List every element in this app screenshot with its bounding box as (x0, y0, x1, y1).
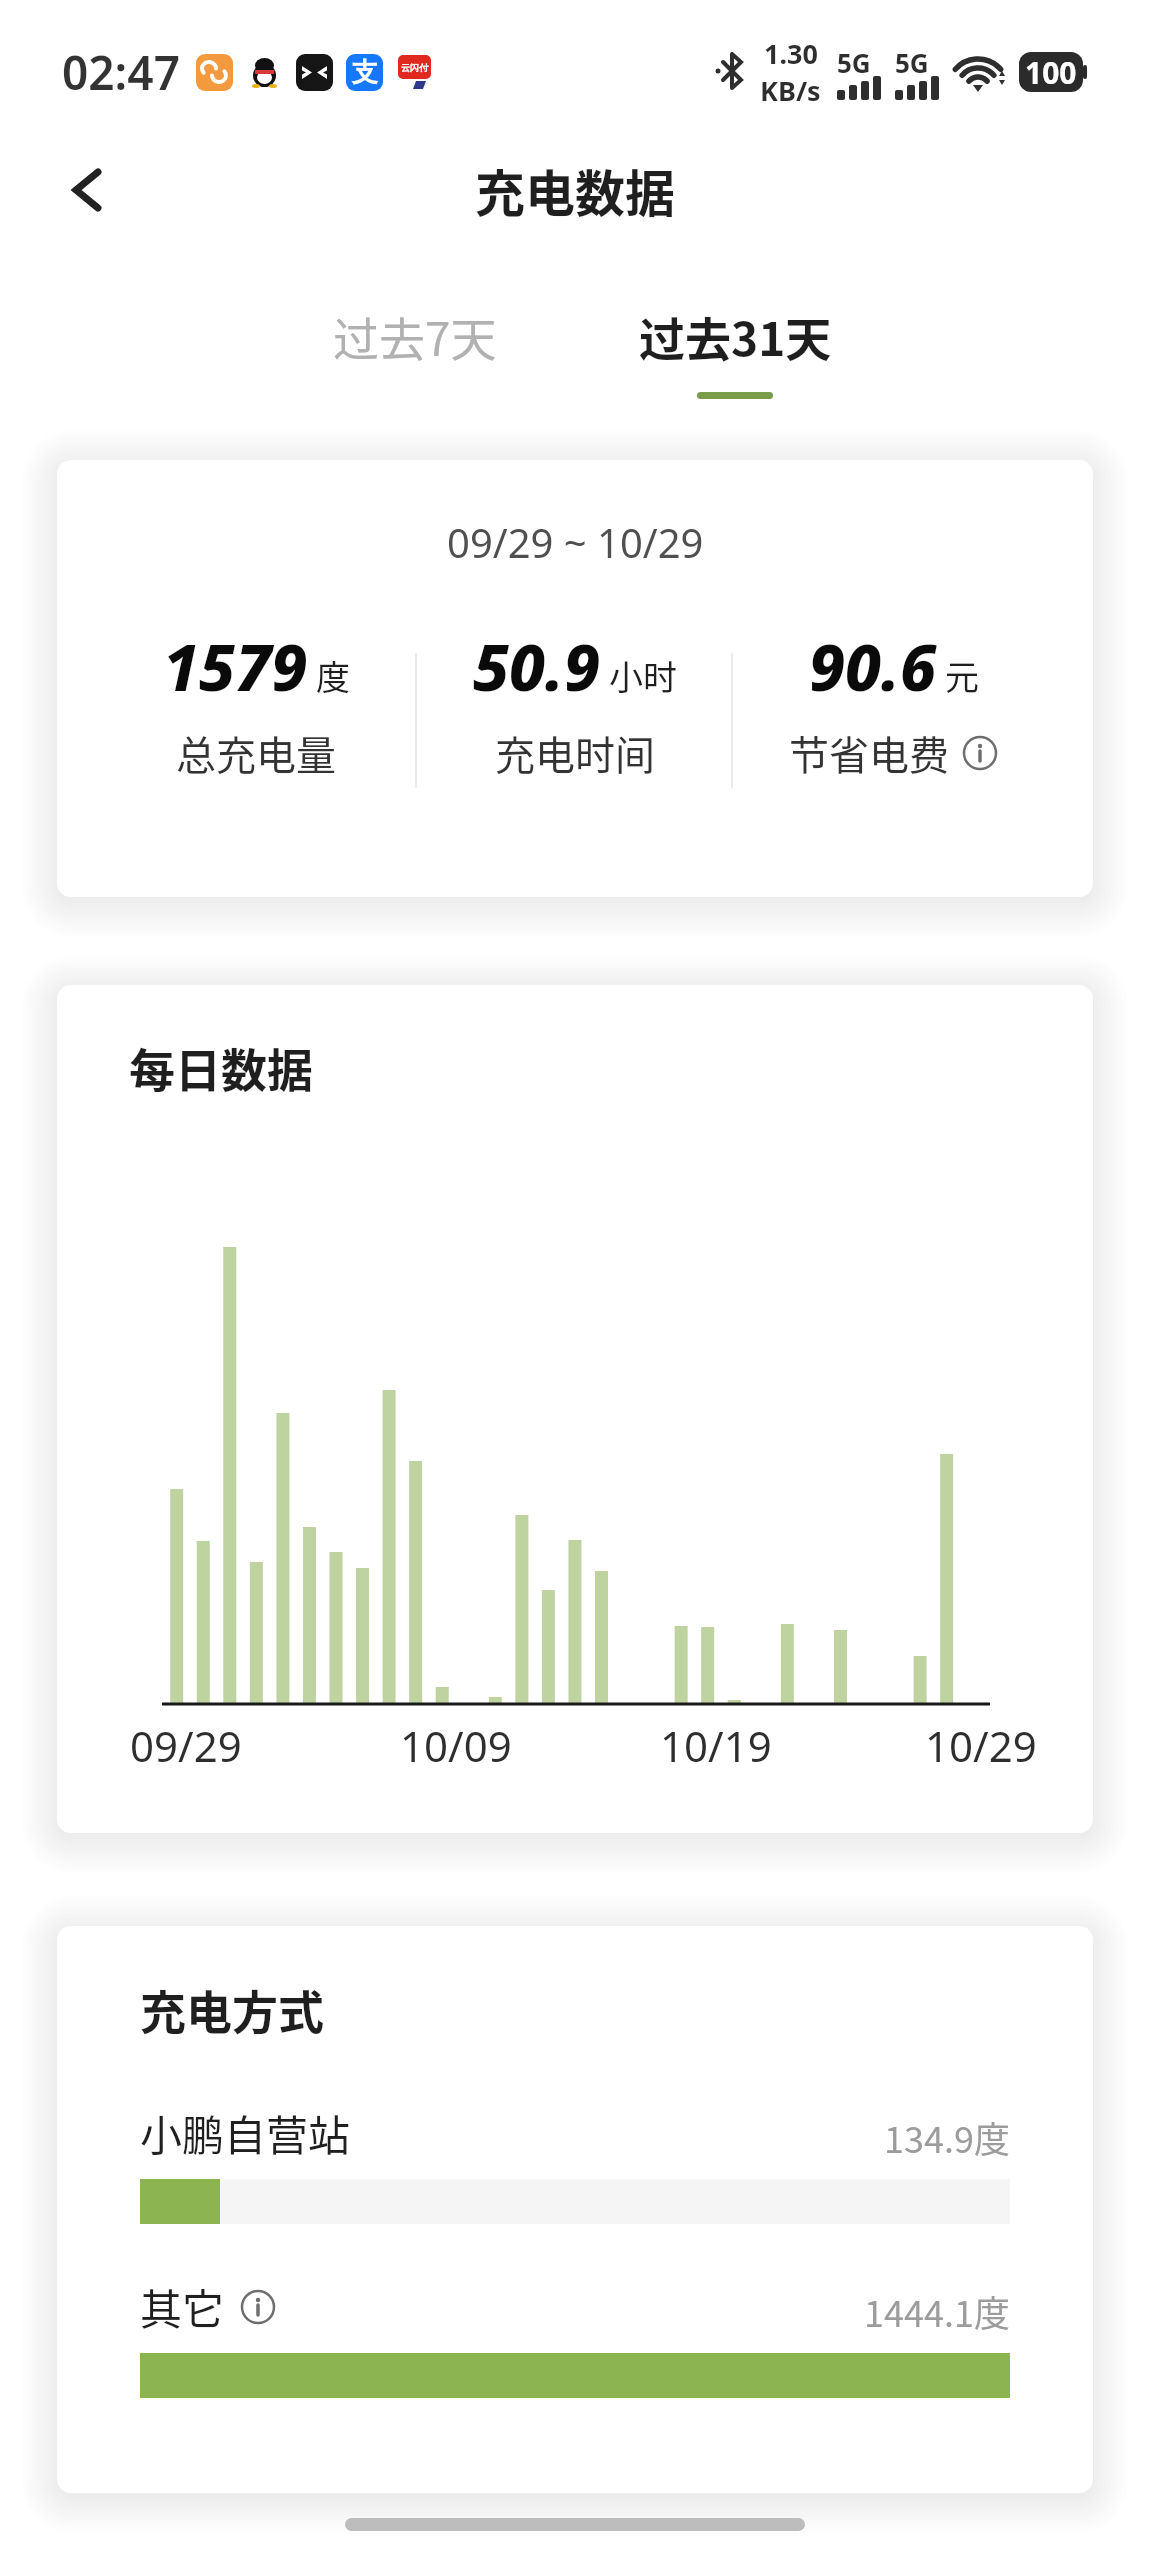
button[interactable]: 节省电费 (789, 724, 999, 782)
button[interactable]: 其它 (140, 2276, 277, 2337)
staticText: 节省电费 (789, 724, 949, 782)
staticText: 90.6 (809, 623, 937, 710)
staticText: 过去31天 (639, 303, 832, 370)
staticText: 1.30 (764, 35, 818, 72)
staticText: 总充电量 (176, 724, 336, 782)
staticText: 10/09 (400, 1717, 512, 1774)
staticText: 充电时间 (495, 724, 655, 782)
staticText: 云闪付 (401, 62, 428, 73)
button[interactable]: 过去31天 (575, 303, 895, 399)
staticText: 每日数据 (129, 1034, 313, 1101)
staticText: 支 (352, 56, 378, 89)
staticText: 其它 (140, 2276, 225, 2337)
staticText: 50.9 (473, 623, 601, 710)
staticText: 10/29 (925, 1717, 1037, 1774)
staticText: 09/29 (130, 1717, 242, 1774)
staticText: 5G (895, 45, 929, 80)
staticText: 100 (1025, 52, 1077, 92)
staticText: 过去7天 (333, 303, 497, 370)
staticText: 09/29 ~ 10/29 (447, 515, 704, 569)
staticText: 134.9度 (884, 2111, 1010, 2163)
staticText: 充电方式 (140, 1976, 324, 2043)
staticText: 充电数据 (475, 154, 675, 226)
staticText: 02:47 (62, 41, 180, 104)
staticText: 10/19 (660, 1717, 772, 1774)
staticText: 5G (837, 45, 871, 80)
button[interactable]: 过去7天 (255, 303, 575, 399)
staticText: 1444.1度 (864, 2285, 1010, 2337)
staticText: 1579 (163, 623, 308, 710)
staticText: 度 (316, 651, 350, 700)
staticText: 小时 (609, 651, 677, 700)
staticText: 元 (945, 651, 979, 700)
staticText: KB/s (760, 72, 821, 109)
staticText: 小鹏自营站 (140, 2102, 351, 2163)
button[interactable] (58, 160, 118, 220)
